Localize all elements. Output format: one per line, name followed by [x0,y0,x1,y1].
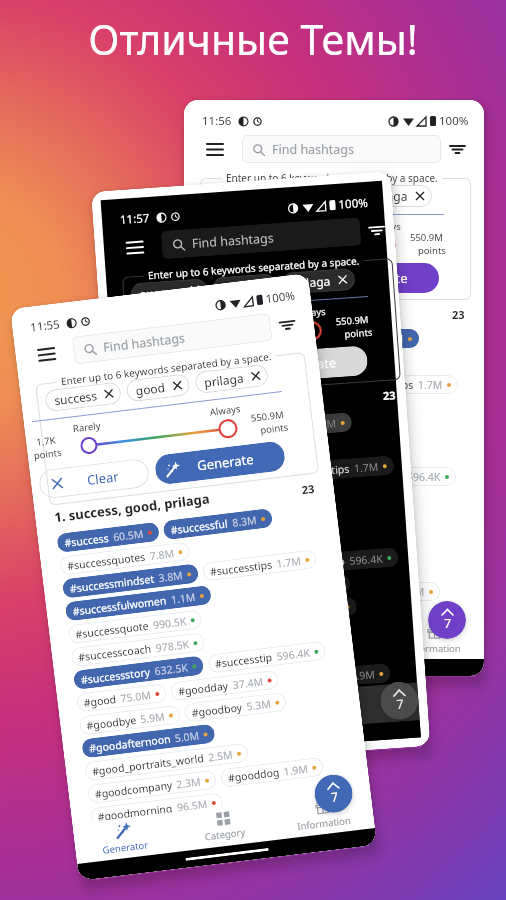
button[interactable]: Find hashtags [72,313,273,365]
button[interactable]: #successcoach [144,533,279,561]
button[interactable]: Scroll to top, 7 groups [428,601,466,639]
button[interactable]: Generate [309,263,439,293]
button[interactable]: #successtips [344,375,458,394]
button[interactable]: #successful [163,508,273,540]
button[interactable]: #successquotes [59,541,190,576]
button[interactable]: Scroll to top, 7 groups [312,772,355,815]
staticText: 23 [452,307,465,322]
staticText: 1.7M [353,460,379,475]
button[interactable]: Find hashtags [242,135,441,163]
button[interactable]: #goodmorning [155,693,289,722]
button[interactable]: Scroll to top, 7 groups [379,680,420,721]
staticText: #successtip [287,554,346,572]
button[interactable]: #goodboy [254,596,357,623]
button[interactable]: #goodmorning [89,792,224,827]
staticText: #goodday [305,493,356,507]
button[interactable]: #goodboy [309,513,411,532]
staticText: Always [294,305,326,320]
button[interactable]: #goodday [298,490,406,509]
button[interactable]: Information [384,619,484,659]
button[interactable]: Filter [276,314,298,336]
staticText: 1.7K [194,229,214,242]
button[interactable]: #goodcompany [203,582,332,601]
button[interactable]: #successquotes [203,352,333,371]
button[interactable]: #goodboy [184,692,287,723]
button[interactable]: success [208,185,284,207]
button[interactable]: success [44,381,122,412]
button[interactable]: #goodafternoon [81,724,215,758]
button[interactable]: #successquote [67,609,203,644]
button[interactable]: #successful [242,412,352,439]
button[interactable]: #success [203,329,305,348]
button[interactable]: #successquotes [137,441,268,469]
staticText: #goodboy [316,516,367,530]
button[interactable]: #goodday [241,574,351,600]
button[interactable]: #goodday [170,669,279,701]
button[interactable]: #successstory [145,556,276,584]
button[interactable]: #good_portraits_world [84,743,249,781]
button[interactable]: Menu [205,139,225,159]
button[interactable]: #successmindset [139,464,276,492]
button[interactable]: #successtip [207,641,326,674]
button[interactable]: Filter [366,219,387,241]
button[interactable]: #successful [310,329,419,348]
button[interactable]: prilaga [194,364,269,394]
button[interactable]: good [212,273,277,300]
button[interactable]: #gooddog [287,663,391,689]
button[interactable]: #goodafternoon [150,625,284,653]
button[interactable]: #goodbye [78,705,181,736]
button[interactable]: #successmindset [203,375,339,394]
button[interactable]: #goodbye [203,513,304,532]
button[interactable]: prilaga [359,185,432,207]
button[interactable]: Clear [38,458,150,500]
button[interactable]: #successtip [338,467,456,486]
button[interactable]: #successstory [203,467,333,486]
staticText: 75.0M [191,586,223,602]
button[interactable]: success [130,278,208,305]
button[interactable]: #goodcompany [153,671,283,699]
button[interactable]: #successfulwomen [140,486,287,515]
button[interactable]: Generator [184,619,284,659]
button[interactable]: #good_portraits_world [203,559,367,578]
button[interactable]: #successtip [280,547,399,575]
button[interactable]: Category [284,619,384,659]
button[interactable]: #good [76,683,167,713]
button[interactable]: Filter [447,139,467,159]
button[interactable]: #gooddog [220,757,324,788]
button[interactable]: #successcoach [203,444,337,463]
button[interactable]: Generate [237,345,368,384]
button[interactable]: #success [56,522,160,553]
button[interactable]: Generate [154,440,286,486]
button[interactable]: #successcoach [70,632,205,667]
button[interactable]: #goodcompany [87,770,217,804]
button[interactable]: #successtips [279,456,394,482]
button[interactable]: good [290,185,353,207]
button[interactable]: Find hashtags [161,217,361,259]
button[interactable]: #successtips [202,549,317,582]
button[interactable]: Menu [35,343,58,365]
button[interactable]: Generator [72,812,176,864]
button[interactable]: #successquote [142,510,277,538]
button[interactable]: #gooddog [337,582,440,601]
button[interactable]: #good [203,490,293,509]
button[interactable]: Clear [120,356,232,392]
button[interactable]: #good_portraits_world [152,645,316,676]
button[interactable]: #successmindset [62,563,199,599]
button[interactable]: #successstory [73,655,204,690]
button[interactable]: #goodbye [148,604,250,630]
button[interactable]: Category [172,800,276,852]
button[interactable]: #success [135,420,239,446]
button[interactable]: Clear [192,264,302,293]
staticText: #goodbye [210,516,260,530]
button[interactable]: #successquote [203,421,337,440]
button[interactable]: good [125,373,191,402]
staticText: 7 [396,695,405,713]
button[interactable]: Information [271,788,375,840]
button[interactable]: #successfulwomen [65,585,212,621]
button[interactable]: #successfulwomen [203,398,349,417]
button[interactable]: prilaga [281,268,355,295]
button[interactable]: Menu [124,236,146,258]
button[interactable]: #good [147,582,238,607]
